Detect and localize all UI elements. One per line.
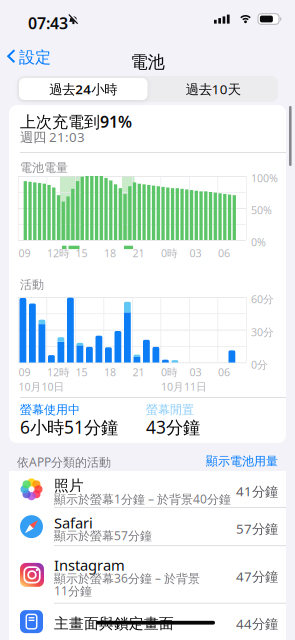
staticText: 03 xyxy=(189,246,201,260)
staticText: 活動 xyxy=(20,277,44,292)
staticText: 0分 xyxy=(251,357,268,372)
staticText: 設定 xyxy=(19,48,51,67)
button[interactable]: 過去24小時 xyxy=(19,78,147,100)
staticText: 07:43 xyxy=(28,12,68,34)
staticText: 06 xyxy=(218,246,230,260)
staticText: 18 xyxy=(104,365,116,379)
staticText: 顯示於螢幕1分鐘 – 於背景40分鐘 xyxy=(54,491,231,507)
button[interactable]: 主畫面與鎖定畫面 xyxy=(9,603,286,640)
staticText: 21 xyxy=(132,246,144,260)
button[interactable]: 顯示電池用量 xyxy=(0,454,278,469)
button[interactable]: 過去10天 xyxy=(150,78,276,100)
staticText: Safari xyxy=(54,513,93,533)
staticText: 照片 xyxy=(54,476,84,494)
staticText: 60分 xyxy=(251,292,274,306)
staticText: 電池 xyxy=(130,51,164,73)
staticText: 週四 21:03 xyxy=(20,128,85,146)
staticText: 21 xyxy=(132,365,144,379)
staticText: 顯示於螢幕36分鐘 – 於背景 xyxy=(54,570,200,586)
staticText: 顯示電池用量 xyxy=(206,454,278,469)
staticText: 0時 xyxy=(161,246,178,260)
staticText: 12時 xyxy=(47,365,70,379)
staticText: 15 xyxy=(75,365,87,379)
staticText: 41分鐘 xyxy=(236,482,278,500)
staticText: 15 xyxy=(75,246,87,260)
staticText: 50% xyxy=(251,203,272,217)
staticText: Instagram xyxy=(54,555,125,575)
button[interactable]: Instagram xyxy=(9,546,286,603)
staticText: 0% xyxy=(251,235,266,249)
staticText: 0時 xyxy=(161,365,178,379)
staticText: 18 xyxy=(104,246,116,260)
button[interactable]: 設定 xyxy=(6,52,52,66)
staticText: 螢幕閒置 xyxy=(146,402,194,417)
staticText: 螢幕使用中 xyxy=(20,402,80,417)
staticText: 顯示於螢幕57分鐘 xyxy=(54,528,152,543)
staticText: 03 xyxy=(189,365,201,379)
staticText: 11分鐘 xyxy=(54,583,92,599)
staticText: 過去24小時 xyxy=(49,80,117,98)
staticText: 10月10日 xyxy=(18,379,64,394)
button[interactable]: Safari xyxy=(9,508,286,546)
staticText: 09 xyxy=(18,246,30,260)
staticText: 6小時51分鐘 xyxy=(20,415,118,438)
staticText: 57分鐘 xyxy=(236,520,278,537)
staticText: 12時 xyxy=(47,246,70,260)
staticText: 47分鐘 xyxy=(236,567,278,585)
staticText: 依APP分類的活動 xyxy=(17,454,111,470)
staticText: 主畫面與鎖定畫面 xyxy=(54,615,174,633)
staticText: 06 xyxy=(218,365,230,379)
button[interactable]: 照片 xyxy=(9,471,286,508)
staticText: 10月11日 xyxy=(161,379,207,394)
staticText: 44分鐘 xyxy=(236,615,278,632)
staticText: 電池電量 xyxy=(20,160,68,175)
staticText: 100% xyxy=(251,171,278,185)
staticText: 43分鐘 xyxy=(146,415,200,438)
staticText: 09 xyxy=(18,365,30,379)
staticText: 30分 xyxy=(251,325,274,339)
staticText: 過去10天 xyxy=(186,80,241,98)
staticText: 上次充電到91% xyxy=(20,111,132,132)
